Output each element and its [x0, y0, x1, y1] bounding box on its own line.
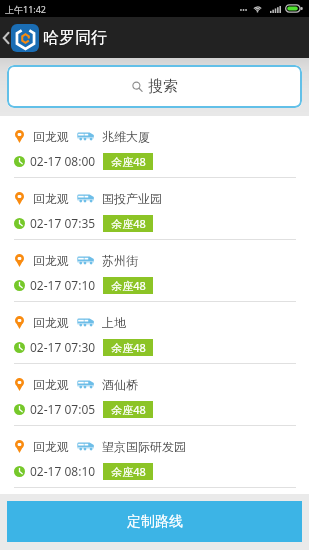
staticText: 上午11:42: [5, 3, 47, 15]
staticText: 回龙观: [33, 129, 69, 143]
staticText: 余座48: [111, 464, 146, 479]
staticText: 02-17 07:10: [30, 277, 96, 293]
staticText: 余座48: [111, 216, 146, 231]
staticText: 余座48: [111, 402, 146, 417]
staticText: 回龙观: [33, 377, 69, 391]
staticText: 余座48: [111, 278, 146, 293]
staticText: 苏州街: [102, 253, 138, 267]
staticText: 搜索: [148, 77, 178, 96]
staticText: 回龙观: [33, 253, 69, 267]
staticText: 02-17 08:10: [30, 463, 96, 479]
staticText: 酒仙桥: [102, 377, 138, 391]
staticText: 定制路线: [127, 513, 183, 531]
button[interactable]: 回龙观: [0, 364, 309, 426]
button[interactable]: 回龙观: [0, 426, 309, 488]
staticText: 02-17 08:00: [30, 153, 96, 169]
staticText: 国投产业园: [102, 191, 162, 205]
button[interactable]: 定制路线: [7, 501, 302, 542]
staticText: 兆维大厦: [102, 129, 150, 143]
button[interactable]: 搜索: [7, 65, 302, 108]
button[interactable]: 回龙观: [0, 302, 309, 364]
button[interactable]: 回龙观: [0, 116, 309, 178]
staticText: 回龙观: [33, 315, 69, 329]
button[interactable]: Back: [0, 17, 11, 58]
staticText: 回龙观: [33, 191, 69, 205]
staticText: 回龙观: [33, 439, 69, 453]
staticText: 余座48: [111, 340, 146, 355]
button[interactable]: 回龙观: [0, 240, 309, 302]
staticText: 02-17 07:05: [30, 401, 96, 417]
staticText: 望京国际研发园: [102, 439, 186, 453]
staticText: 02-17 07:30: [30, 339, 96, 355]
button[interactable]: 回龙观: [0, 178, 309, 240]
staticText: 02-17 07:35: [30, 215, 96, 231]
staticText: 上地: [102, 315, 126, 329]
staticText: 哈罗同行: [43, 28, 107, 48]
staticText: 余座48: [111, 154, 146, 169]
